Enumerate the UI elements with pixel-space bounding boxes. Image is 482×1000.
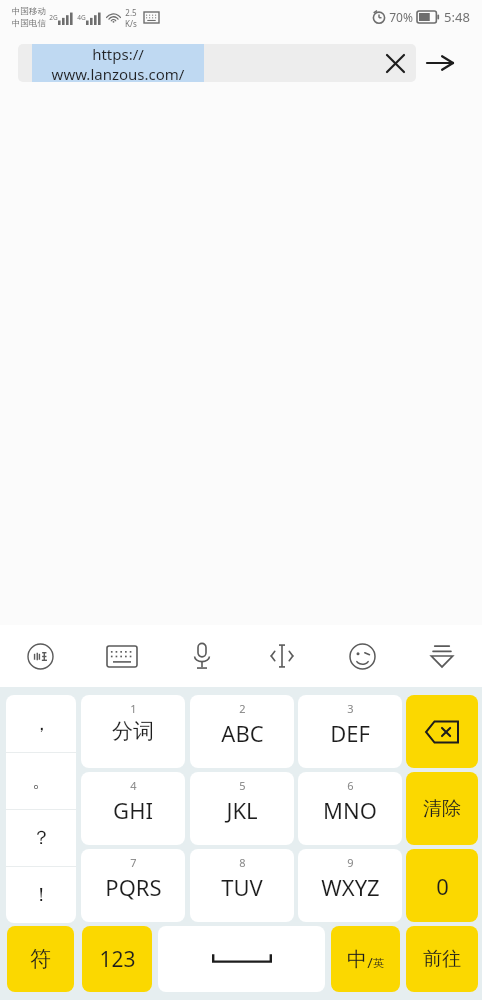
staticText: 0 bbox=[436, 871, 449, 901]
button[interactable]: ？ bbox=[6, 810, 76, 866]
staticText: GHI bbox=[113, 795, 153, 825]
staticText: ！ bbox=[32, 883, 51, 907]
staticText: TUV bbox=[221, 872, 263, 902]
staticText: 2.5 bbox=[125, 7, 137, 18]
staticText: K/s bbox=[125, 18, 137, 29]
button[interactable]: 9 bbox=[298, 849, 402, 922]
staticText: 前往 bbox=[423, 947, 461, 971]
staticText: 中国移动 bbox=[12, 6, 46, 17]
button[interactable]: 符 bbox=[7, 926, 74, 992]
button[interactable]: 。 bbox=[6, 753, 76, 809]
staticText: 4 bbox=[130, 778, 137, 793]
button[interactable]: ， bbox=[6, 695, 76, 752]
button[interactable]: Backspace bbox=[406, 695, 478, 768]
button[interactable]: 2 bbox=[190, 695, 294, 768]
staticText: WXYZ bbox=[321, 872, 380, 902]
staticText: 8 bbox=[239, 855, 246, 870]
staticText: 分词 bbox=[112, 718, 154, 744]
staticText: ？ bbox=[32, 826, 51, 850]
staticText: 3 bbox=[347, 701, 354, 716]
staticText: 1 bbox=[130, 701, 137, 716]
staticText: 2G bbox=[49, 13, 58, 22]
button[interactable]: Go bbox=[416, 39, 464, 87]
staticText: 6 bbox=[347, 778, 354, 793]
button[interactable]: https://www.lanzous.com/b0ejbs7id bbox=[18, 44, 416, 82]
button[interactable]: 清除 bbox=[406, 772, 478, 845]
staticText: https://www.lanzous.com/b0ejbs7id bbox=[32, 44, 204, 82]
button[interactable]: 7 bbox=[81, 849, 185, 922]
staticText: MNO bbox=[323, 795, 377, 825]
button[interactable]: Keyboard layout bbox=[81, 625, 162, 687]
staticText: 70% bbox=[389, 9, 413, 25]
button[interactable]: 0 bbox=[406, 849, 478, 922]
staticText: 清除 bbox=[423, 797, 461, 821]
button[interactable]: 前往 bbox=[406, 926, 478, 992]
staticText: DEF bbox=[330, 718, 370, 748]
button[interactable]: Clear bbox=[376, 44, 414, 82]
button[interactable]: 3 bbox=[298, 695, 402, 768]
staticText: 9 bbox=[347, 855, 354, 870]
button[interactable]: 6 bbox=[298, 772, 402, 845]
staticText: 符 bbox=[30, 946, 51, 972]
button[interactable]: Move cursor bbox=[242, 625, 322, 687]
staticText: 5:48 bbox=[444, 8, 470, 26]
staticText: 2 bbox=[239, 701, 246, 716]
button[interactable]: Space bbox=[158, 926, 325, 992]
button[interactable]: 中 bbox=[331, 926, 400, 992]
staticText: JKL bbox=[226, 795, 258, 825]
staticText: 中国电信 bbox=[12, 18, 46, 29]
staticText: PQRS bbox=[105, 872, 162, 902]
button[interactable]: ！ bbox=[6, 867, 76, 923]
button[interactable]: 5 bbox=[190, 772, 294, 845]
button[interactable]: Hide keyboard bbox=[402, 625, 482, 687]
button[interactable]: 4 bbox=[81, 772, 185, 845]
staticText: ABC bbox=[221, 718, 264, 748]
staticText: 中 bbox=[347, 947, 367, 972]
button[interactable]: 1 bbox=[81, 695, 185, 768]
button[interactable]: 8 bbox=[190, 849, 294, 922]
staticText: 123 bbox=[99, 945, 136, 974]
staticText: 7 bbox=[130, 855, 137, 870]
staticText: 。 bbox=[32, 769, 51, 793]
staticText: 英 bbox=[373, 956, 384, 970]
button[interactable]: Input method bbox=[0, 625, 81, 687]
button[interactable]: 123 bbox=[82, 926, 152, 992]
staticText: ， bbox=[32, 712, 51, 736]
staticText: / bbox=[367, 952, 373, 972]
staticText: 5 bbox=[239, 778, 246, 793]
button[interactable]: Voice input bbox=[162, 625, 242, 687]
button[interactable]: Emoji bbox=[322, 625, 402, 687]
staticText: 4G bbox=[77, 13, 86, 22]
